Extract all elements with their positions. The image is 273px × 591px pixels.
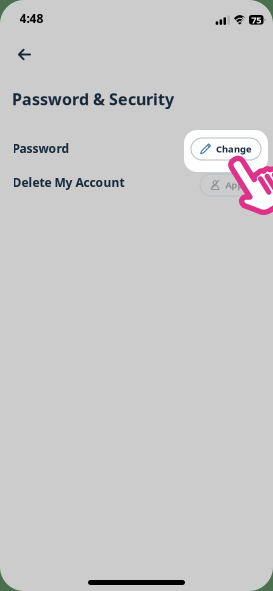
staticText: Password <box>12 140 69 156</box>
button[interactable]: Back <box>7 39 41 69</box>
staticText: 4:48 <box>19 10 43 26</box>
button[interactable]: Change <box>191 138 261 160</box>
staticText: Change <box>216 143 252 155</box>
staticText: Delete My Account <box>12 174 124 190</box>
staticText: Apply <box>225 179 251 191</box>
staticText: Password & Security <box>12 88 174 110</box>
button[interactable]: Apply <box>200 174 261 196</box>
staticText: 75 <box>251 14 261 26</box>
